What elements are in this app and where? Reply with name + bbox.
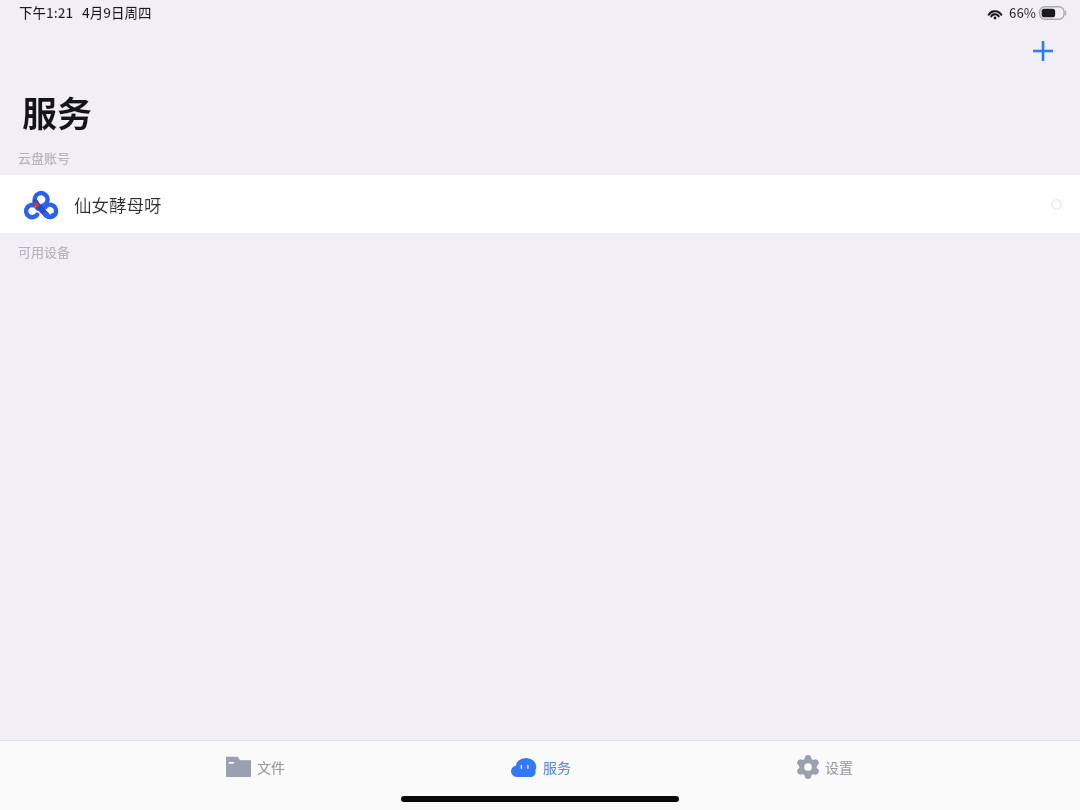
staticText: 仙女酵母呀 — [74, 192, 162, 217]
staticText: 服务 — [22, 86, 93, 137]
staticText: 文件 — [257, 757, 285, 777]
button[interactable]: 文件 — [185, 741, 325, 792]
staticText: 下午1:21 — [19, 2, 74, 22]
staticText: 云盘账号 — [18, 148, 71, 167]
staticText: 服务 — [543, 757, 571, 777]
staticText: 设置 — [825, 757, 853, 777]
button[interactable]: 仙女酵母呀 — [0, 175, 1080, 233]
button[interactable]: Add — [1021, 29, 1065, 73]
staticText: 可用设备 — [18, 242, 71, 261]
staticText: 66% — [1009, 3, 1037, 22]
button[interactable]: 设置 — [755, 741, 895, 792]
button[interactable]: 服务 — [471, 741, 611, 792]
staticText: 4月9日周四 — [82, 2, 152, 22]
